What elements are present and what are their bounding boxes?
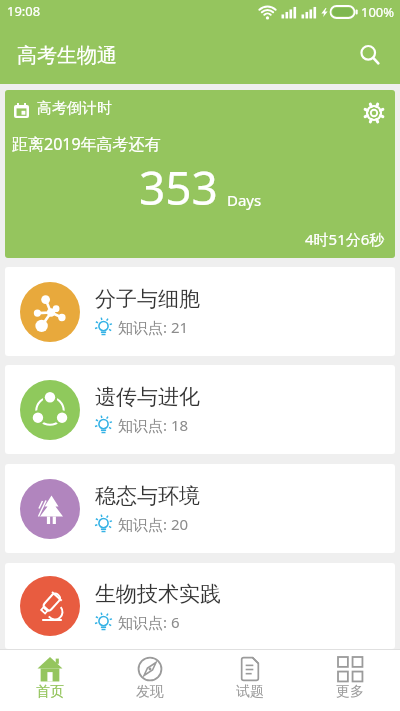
button[interactable]: 稳态与环境	[5, 464, 395, 553]
staticText: 知识点: 18	[118, 415, 189, 435]
staticText: 距离2019年高考还有	[12, 133, 161, 155]
staticText: 遗传与进化	[95, 384, 200, 410]
button[interactable]: 生物技术实践	[5, 563, 395, 649]
staticText: 知识点: 20	[118, 514, 189, 534]
staticText: 100%	[361, 3, 395, 21]
staticText: 19:08	[7, 2, 41, 20]
staticText: 知识点: 21	[118, 317, 189, 337]
staticText: 知识点: 6	[118, 612, 180, 632]
button[interactable]: 更多	[300, 650, 400, 711]
staticText: 生物技术实践	[95, 581, 221, 607]
staticText: Days	[227, 190, 262, 210]
staticText: 353	[139, 156, 218, 219]
staticText: 更多	[336, 683, 364, 701]
button[interactable]: 发现	[100, 650, 200, 711]
staticText: 分子与细胞	[95, 286, 200, 312]
button[interactable]: 分子与细胞	[5, 267, 395, 356]
staticText: 首页	[36, 683, 64, 701]
button[interactable]	[357, 96, 391, 130]
staticText: 4时51分6秒	[305, 229, 385, 249]
staticText: 高考生物通	[17, 43, 117, 68]
button[interactable]: 首页	[0, 650, 100, 711]
staticText: 发现	[136, 683, 164, 701]
staticText: 高考倒计时	[37, 99, 112, 118]
staticText: 稳态与环境	[95, 483, 200, 509]
button[interactable]: 试题	[200, 650, 300, 711]
button[interactable]: 遗传与进化	[5, 365, 395, 454]
button[interactable]: 高考倒计时	[5, 90, 395, 258]
button[interactable]	[350, 35, 390, 75]
staticText: 试题	[236, 683, 264, 701]
